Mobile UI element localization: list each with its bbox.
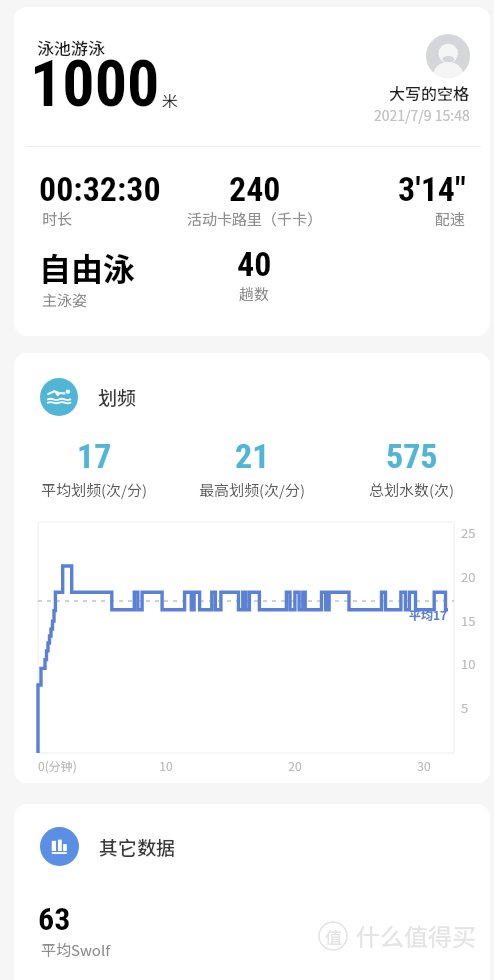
staticText: 值: [325, 924, 342, 949]
staticText: 划频: [98, 383, 137, 411]
staticText: 平均Swolf: [41, 939, 111, 961]
staticText: 配速: [435, 208, 466, 230]
staticText: 10: [154, 757, 178, 774]
staticText: 20: [283, 757, 307, 774]
staticText: 17: [77, 436, 112, 476]
staticText: 20: [461, 567, 476, 586]
staticText: 时长: [42, 208, 73, 230]
staticText: 00:32:30: [39, 169, 161, 209]
staticText: 活动卡路里（千卡）: [187, 208, 323, 230]
staticText: 30: [412, 757, 436, 774]
staticText: 1000: [30, 47, 160, 122]
staticText: 大写的空格: [389, 81, 470, 104]
staticText: 其它数据: [99, 833, 176, 861]
staticText: 2021/7/9 15:48: [374, 105, 470, 125]
staticText: 40: [237, 244, 272, 284]
staticText: 15: [461, 611, 476, 630]
staticText: 什么值得买: [356, 918, 476, 953]
staticText: 平均划频(次/分): [41, 479, 148, 501]
staticText: 3'14": [398, 169, 466, 209]
staticText: 21: [235, 436, 270, 476]
button[interactable]: User avatar: [426, 34, 470, 78]
button[interactable]: 划频: [40, 378, 137, 416]
staticText: 平均17: [409, 606, 448, 623]
staticText: 25: [461, 523, 476, 542]
staticText: 主泳姿: [42, 289, 88, 311]
staticText: 最高划频(次/分): [199, 479, 306, 501]
staticText: 泳池游泳: [37, 35, 105, 60]
staticText: 自由泳: [39, 244, 136, 290]
staticText: 米: [162, 88, 179, 111]
staticText: 63: [38, 900, 71, 938]
button[interactable]: 其它数据: [40, 827, 176, 866]
staticText: 10: [461, 654, 476, 673]
staticText: 5: [461, 698, 469, 717]
staticText: 趟数: [239, 283, 270, 305]
staticText: 575: [386, 436, 438, 476]
staticText: 240: [229, 169, 281, 209]
staticText: 0(分钟): [38, 757, 77, 774]
staticText: 总划水数(次): [369, 479, 455, 501]
